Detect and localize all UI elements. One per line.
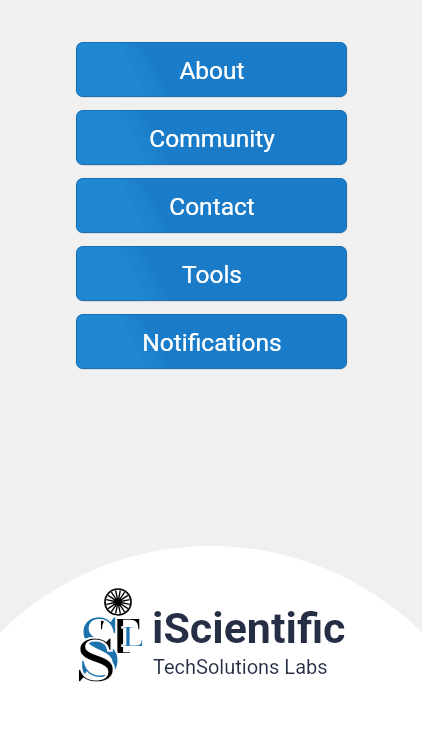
staticText: T [99, 602, 142, 671]
staticText: About [179, 56, 245, 85]
staticText: S [78, 591, 121, 693]
staticText: Contact [169, 192, 255, 221]
button[interactable]: Tools [76, 246, 347, 301]
staticText: Community [149, 124, 275, 153]
staticText: TechSolutions Labs [153, 655, 328, 678]
button[interactable]: Community [76, 110, 347, 165]
staticText: Notifications [142, 328, 282, 357]
staticText: iScientific [152, 603, 346, 653]
staticText: L [122, 619, 144, 656]
staticText: S [78, 591, 121, 693]
button[interactable]: About [76, 42, 347, 97]
button[interactable]: Notifications [76, 314, 347, 369]
staticText: Tools [182, 260, 242, 289]
button[interactable]: Contact [76, 178, 347, 233]
staticText: L [122, 619, 144, 656]
staticText: S [75, 618, 117, 703]
staticText: S [75, 618, 117, 703]
